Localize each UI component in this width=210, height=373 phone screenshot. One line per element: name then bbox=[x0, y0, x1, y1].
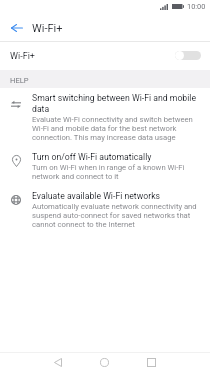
staticText: Wi-Fi+ bbox=[32, 22, 63, 35]
staticText: Wi-Fi+ bbox=[10, 51, 35, 62]
button[interactable]: Back bbox=[43, 352, 72, 373]
staticText: Evaluate available Wi-Fi networks bbox=[32, 191, 161, 201]
button[interactable]: Smart switching between Wi-Fi and mobile… bbox=[0, 88, 210, 147]
staticText: Automatically evaluate network connectiv… bbox=[32, 202, 200, 229]
staticText: Turn on Wi-Fi when in range of a known W… bbox=[32, 163, 200, 181]
button[interactable]: Wi-Fi+ bbox=[0, 42, 210, 70]
button[interactable]: Back bbox=[0, 14, 32, 42]
staticText: Turn on/off Wi-Fi automatically bbox=[32, 152, 152, 162]
staticText: HELP bbox=[10, 76, 29, 85]
button[interactable]: Home bbox=[90, 352, 119, 373]
button[interactable]: Evaluate available Wi-Fi networks bbox=[0, 186, 210, 234]
button[interactable]: Recent apps bbox=[137, 352, 166, 373]
staticText: 10:00 bbox=[187, 2, 206, 11]
staticText: Smart switching between Wi-Fi and mobile… bbox=[32, 93, 200, 114]
staticText: Evaluate Wi-Fi connectivity and switch b… bbox=[32, 115, 200, 142]
button[interactable]: Turn on/off Wi-Fi automatically bbox=[0, 147, 210, 186]
